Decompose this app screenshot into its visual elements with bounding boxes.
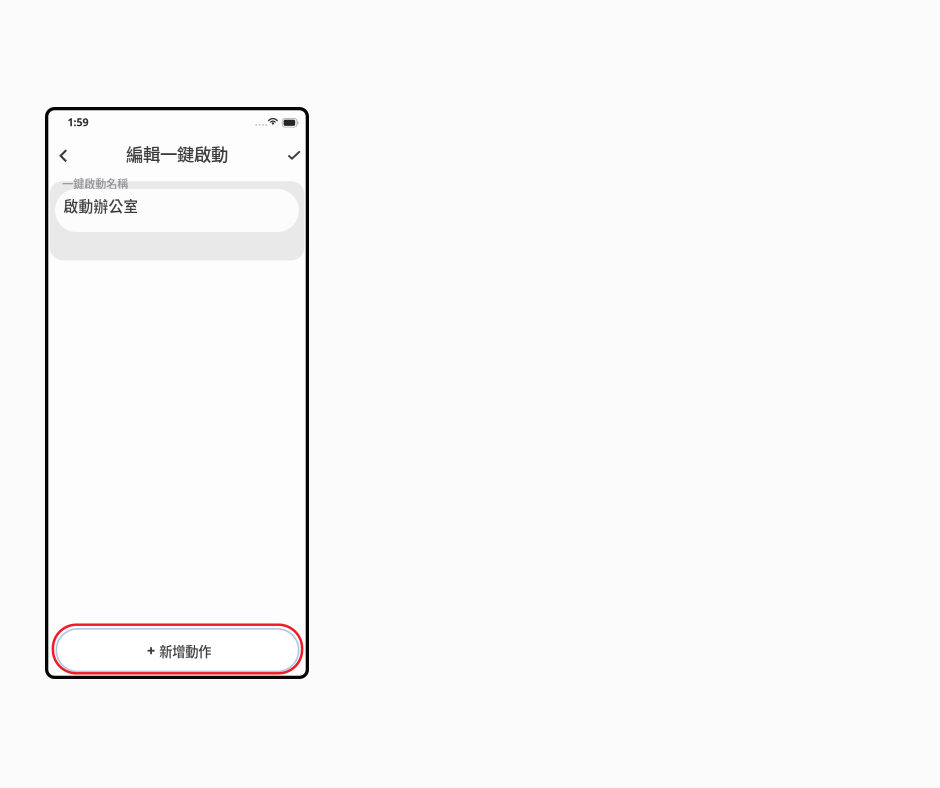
staticText: 一鍵啟動名稱 xyxy=(62,175,128,191)
staticText: 編輯一鍵啟動 xyxy=(126,141,228,166)
button[interactable]: 完成 xyxy=(48,141,74,171)
staticText: 啟動辦公室 xyxy=(63,195,138,216)
button[interactable]: 新增動作 xyxy=(56,629,299,671)
button[interactable]: 返回 xyxy=(48,141,74,171)
staticText: 1:59 xyxy=(68,115,89,129)
staticText: 新增動作 xyxy=(159,641,211,660)
button[interactable]: 啟動辦公室 xyxy=(55,189,299,232)
